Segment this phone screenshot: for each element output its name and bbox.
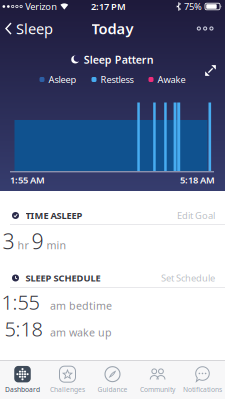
button[interactable]: More options [197, 27, 213, 30]
staticText: Community [140, 385, 175, 394]
staticText: Edit Goal [177, 209, 215, 222]
staticText: am wake up [50, 325, 112, 339]
staticText: SLEEP SCHEDULE [25, 272, 100, 284]
button[interactable]: Expand chart [205, 65, 216, 76]
staticText: Verizon [25, 0, 57, 13]
staticText: 1:55 AM [10, 174, 45, 186]
button[interactable]: Notifications [180, 361, 225, 399]
button[interactable]: Edit Goal [177, 209, 215, 222]
staticText: 5:18 AM [180, 174, 215, 186]
staticText: Today [91, 19, 133, 38]
staticText: 1:55 [1, 289, 39, 315]
staticText: Notifications [183, 385, 222, 394]
staticText: TIME ASLEEP [25, 209, 82, 222]
staticText: 3 [2, 227, 14, 255]
staticText: Sleep Pattern [84, 52, 154, 67]
staticText: Challenges [50, 385, 85, 394]
staticText: 75% [184, 0, 202, 13]
staticText: Set Schedule [161, 272, 215, 284]
staticText: 5:18 [4, 315, 42, 342]
staticText: min [46, 238, 66, 252]
button[interactable]: Set Schedule [161, 272, 215, 284]
staticText: Restless [100, 73, 133, 86]
staticText: Sleep [16, 19, 53, 38]
staticText: Awake [157, 73, 185, 86]
staticText: Guidance [97, 385, 127, 394]
staticText: 9 [31, 227, 43, 255]
staticText: 2:17 PM [91, 0, 126, 13]
button[interactable]: Guidance [90, 361, 135, 399]
button[interactable]: Challenges [45, 361, 90, 399]
staticText: Asleep [48, 73, 76, 86]
button[interactable]: Community [135, 361, 180, 399]
button[interactable]: Dashboard [0, 361, 45, 399]
button[interactable]: Sleep [5, 19, 53, 38]
staticText: am bedtime [50, 298, 112, 313]
staticText: hr [17, 238, 28, 252]
staticText: Dashboard [5, 385, 40, 394]
